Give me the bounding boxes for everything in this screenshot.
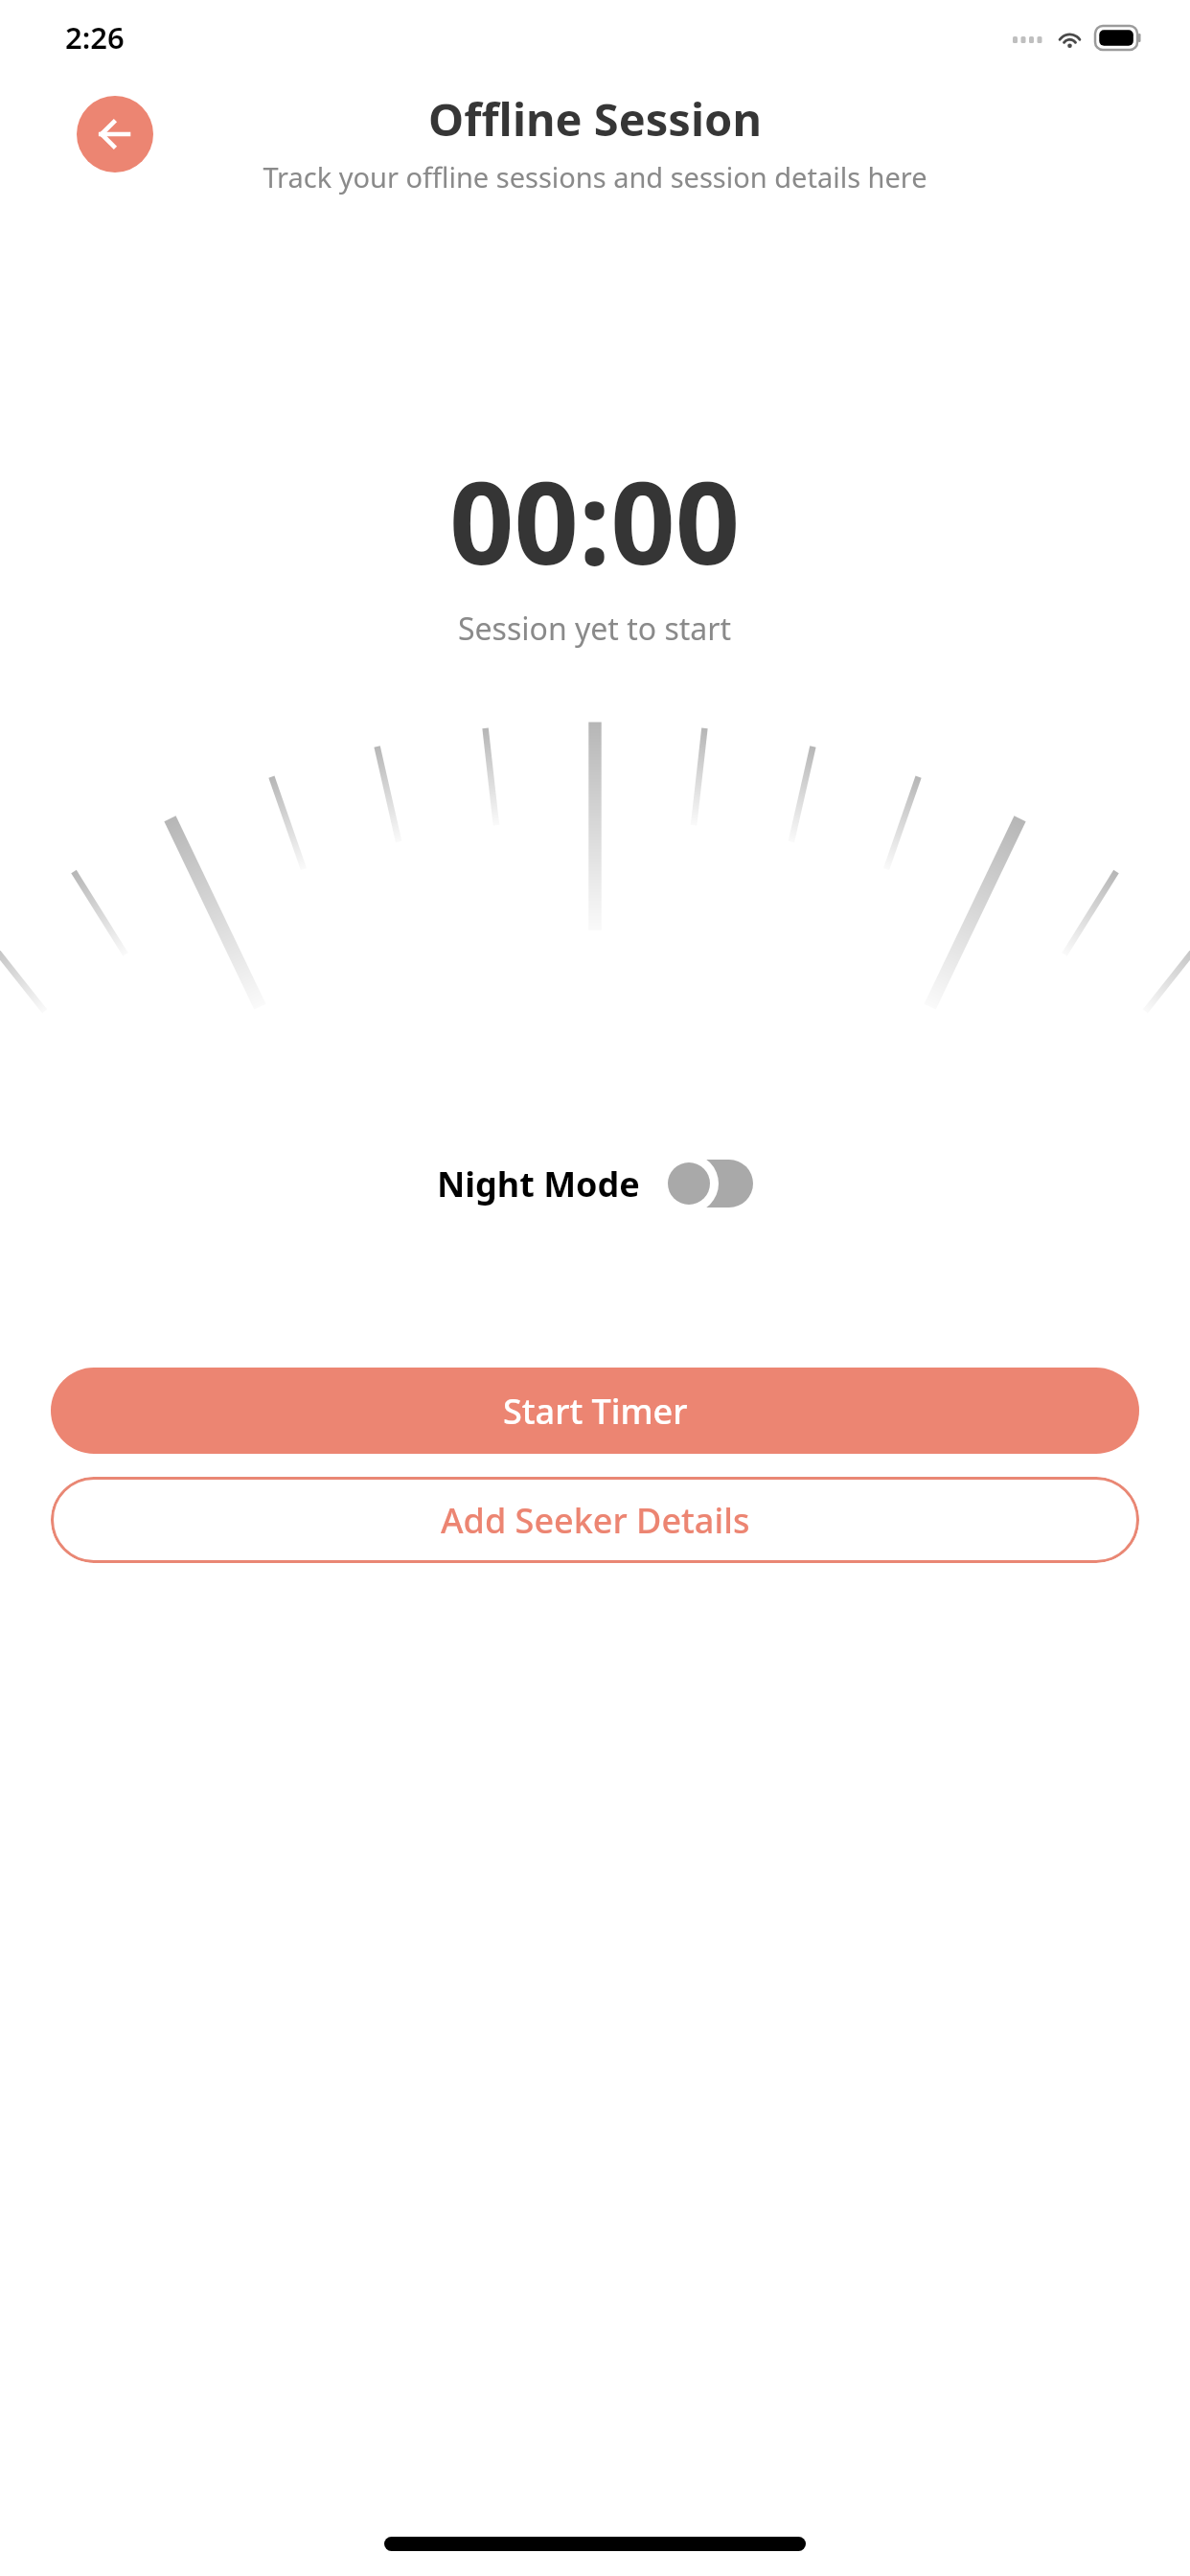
staticText: Add Seeker Details [441, 1497, 750, 1544]
button[interactable]: Add Seeker Details [51, 1477, 1139, 1563]
staticText: Offline Session [428, 88, 762, 149]
staticText: 2:26 [65, 17, 125, 57]
button[interactable]: Night Mode [431, 1148, 759, 1219]
staticText: Night Mode [437, 1161, 640, 1207]
button[interactable]: Start Timer [51, 1368, 1139, 1454]
staticText: Start Timer [503, 1388, 688, 1435]
button[interactable]: Back [77, 96, 153, 172]
staticText: 00:00 [449, 444, 741, 598]
staticText: Session yet to start [458, 608, 732, 650]
staticText: Track your offline sessions and session … [263, 158, 927, 195]
